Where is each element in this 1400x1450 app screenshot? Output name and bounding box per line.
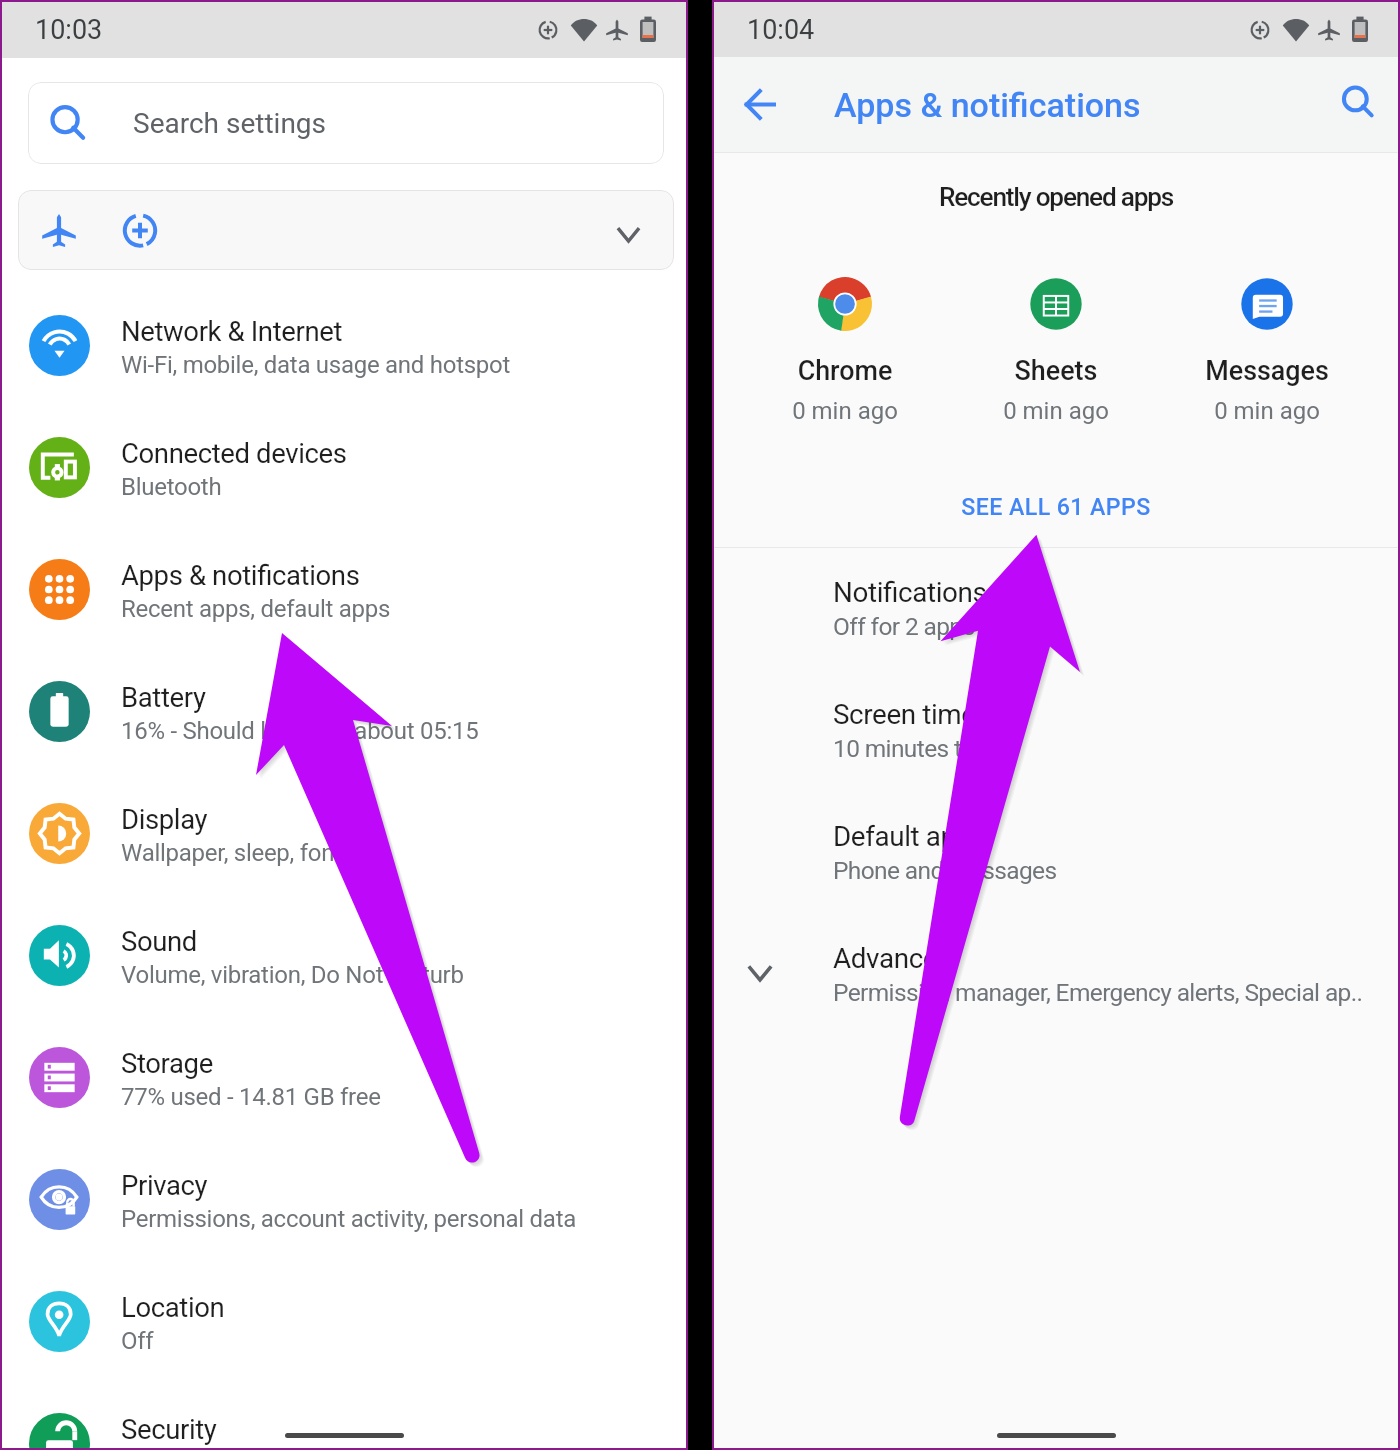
button[interactable]: Storage bbox=[2, 1017, 686, 1139]
button[interactable]: Connected devices bbox=[2, 407, 686, 529]
button[interactable]: Location bbox=[2, 1261, 686, 1383]
button[interactable]: Data Saver bbox=[110, 190, 170, 270]
staticText: SEE ALL 61 APPS bbox=[714, 493, 1398, 520]
button[interactable]: Security bbox=[2, 1383, 686, 1450]
button[interactable]: Battery bbox=[2, 651, 686, 773]
button[interactable]: SEE ALL 61 APPS bbox=[714, 472, 1398, 530]
staticText: Chrome bbox=[750, 355, 940, 387]
staticText: Battery bbox=[121, 681, 206, 713]
staticText: Sheets bbox=[961, 355, 1151, 387]
button[interactable]: Expand quick settings bbox=[598, 190, 660, 270]
staticText: 0 min ago bbox=[1172, 397, 1362, 425]
staticText: Volume, vibration, Do Not Disturb bbox=[121, 961, 464, 989]
staticText: Permission manager, Emergency alerts, Sp… bbox=[833, 978, 1363, 1007]
staticText: Connected devices bbox=[121, 437, 347, 469]
button[interactable]: Advanced bbox=[714, 908, 1398, 1030]
staticText: Advanced bbox=[833, 942, 953, 975]
button[interactable]: Sound bbox=[2, 895, 686, 1017]
staticText: Off bbox=[121, 1327, 154, 1355]
staticText: Network & Internet bbox=[121, 315, 343, 347]
staticText: 10:04 bbox=[747, 14, 815, 46]
staticText: Phone and Messages bbox=[833, 856, 1057, 885]
staticText: Default apps bbox=[833, 820, 985, 853]
staticText: Messages bbox=[1172, 355, 1362, 387]
staticText: 10 minutes today bbox=[833, 734, 1012, 763]
staticText: Search settings bbox=[133, 107, 327, 140]
staticText: Screen time bbox=[833, 698, 976, 731]
button[interactable]: Back bbox=[732, 76, 788, 132]
staticText: Security bbox=[121, 1413, 217, 1445]
button[interactable]: Default apps bbox=[714, 786, 1398, 908]
button[interactable]: Search bbox=[1330, 74, 1386, 130]
staticText: Notifications bbox=[833, 576, 987, 609]
staticText: 0 min ago bbox=[750, 397, 940, 425]
button[interactable]: Privacy bbox=[2, 1139, 686, 1261]
staticText: Apps & notifications bbox=[121, 559, 360, 591]
staticText: Wi-Fi, mobile, data usage and hotspot bbox=[121, 351, 511, 379]
staticText: Location bbox=[121, 1291, 225, 1323]
staticText: Apps & notifications bbox=[834, 85, 1141, 125]
staticText: 10:03 bbox=[35, 14, 103, 46]
staticText: Display bbox=[121, 803, 208, 835]
staticText: Wallpaper, sleep, font size bbox=[121, 839, 390, 867]
staticText: Recent apps, default apps bbox=[121, 595, 391, 623]
button[interactable]: Search settings bbox=[28, 82, 664, 164]
button[interactable]: Network & Internet bbox=[2, 285, 686, 407]
button[interactable]: Apps & notifications bbox=[2, 529, 686, 651]
staticText: 77% used - 14.81 GB free bbox=[121, 1083, 381, 1111]
button[interactable]: Chrome bbox=[750, 276, 940, 436]
staticText: 16% - Should last until about 05:15 bbox=[121, 717, 479, 745]
button[interactable]: Notifications bbox=[714, 542, 1398, 664]
staticText: Sound bbox=[121, 925, 197, 957]
staticText: Privacy bbox=[121, 1169, 208, 1201]
button[interactable]: Display bbox=[2, 773, 686, 895]
button[interactable]: Sheets bbox=[961, 276, 1151, 436]
button[interactable]: Messages bbox=[1172, 276, 1362, 436]
staticText: 0 min ago bbox=[961, 397, 1151, 425]
button[interactable]: Screen time bbox=[714, 664, 1398, 786]
staticText: Bluetooth bbox=[121, 473, 222, 501]
staticText: Off for 2 apps bbox=[833, 612, 975, 641]
button[interactable]: Airplane mode bbox=[29, 190, 89, 270]
staticText: Storage bbox=[121, 1047, 213, 1079]
staticText: Permissions, account activity, personal … bbox=[121, 1205, 577, 1233]
staticText: Recently opened apps bbox=[714, 182, 1398, 213]
